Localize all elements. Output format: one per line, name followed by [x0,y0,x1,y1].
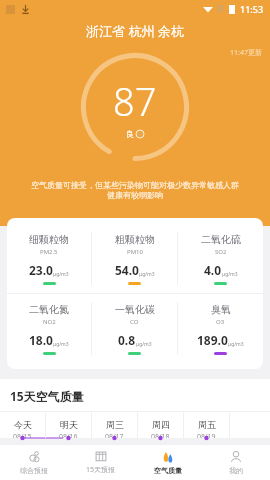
staticText: 浙江省 杭州 余杭 [86,22,184,40]
staticText: 08/19 [197,432,216,438]
staticText: 健康有较弱影响 [107,190,163,200]
button[interactable]: 综合预报 [0,444,67,480]
staticText: 18.0 [29,332,53,348]
staticText: μg/m3 [53,341,69,348]
staticText: 良 [126,129,134,139]
button[interactable]: 臭氧 [178,294,263,363]
staticText: 23.0 [29,262,53,278]
staticText: PM10 [127,248,143,256]
staticText: 二氧化硫 [201,233,241,246]
staticText: 空气质量 [154,466,182,475]
staticText: 08/16 [59,432,78,438]
staticText: μg/m3 [228,341,244,348]
staticText: μg/m3 [136,341,152,348]
staticText: 189.0 [197,332,228,348]
staticText: CO [130,318,139,326]
button[interactable]: 周四 [138,412,183,438]
staticText: 粗颗粒物 [115,233,155,246]
staticText: 空气质量可接受，但某些污染物可能对极少数异常敏感人群 [31,180,239,190]
staticText: 综合预报 [20,466,48,475]
staticText: 4.0 [204,262,222,278]
button[interactable]: 二氧化硫 [178,224,263,293]
staticText: PM2.5 [40,248,58,256]
button[interactable]: 周三 [92,412,137,438]
staticText: 11:47更新 [230,48,262,58]
staticText: 细颗粒物 [29,233,69,246]
staticText: μg/m3 [53,271,69,278]
staticText: O3 [216,318,225,326]
staticText: 一氧化碳 [115,303,155,316]
staticText: 明天 [60,419,78,430]
staticText: 臭氧 [211,303,231,316]
staticText: NO2 [43,318,56,326]
staticText: 08/15 [13,432,32,438]
staticText: SO2 [215,248,227,256]
staticText: 11:53 [240,3,264,15]
button[interactable]: 我的 [202,444,270,480]
staticText: μg/m3 [222,271,238,278]
button[interactable]: 空气质量 [134,444,202,480]
button[interactable]: 周五 [184,412,229,438]
staticText: 周五 [198,419,216,430]
staticText: 08/17 [105,432,124,438]
staticText: 54.0 [115,262,139,278]
button[interactable]: 今天 [0,412,45,438]
button[interactable]: 粗颗粒物 [92,224,177,293]
button[interactable]: 一氧化碳 [92,294,177,363]
button[interactable]: 15天预报 [67,444,134,480]
staticText: 二氧化氮 [29,303,69,316]
button[interactable]: 二氧化氮 [7,294,91,363]
staticText: 我的 [229,466,243,475]
staticText: 15天空气质量 [10,388,84,404]
staticText: 今天 [14,419,32,430]
staticText: 周四 [152,419,170,430]
button[interactable]: 细颗粒物 [7,224,91,293]
staticText: μg/m3 [139,271,155,278]
staticText: 0.8 [118,332,136,348]
staticText: 15天预报 [86,465,116,475]
staticText: 周三 [106,419,124,430]
staticText: 08/18 [151,432,170,438]
button[interactable]: 明天 [46,412,91,438]
staticText: 87 [113,75,157,127]
